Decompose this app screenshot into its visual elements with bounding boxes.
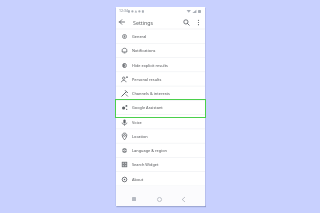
button[interactable]: Language & region: [116, 143, 205, 157]
button[interactable]: Home: [153, 193, 165, 205]
button[interactable]: About: [116, 172, 205, 186]
button[interactable]: Location: [116, 129, 205, 143]
button[interactable]: Search Widget: [116, 157, 205, 171]
staticText: Settings: [133, 19, 154, 26]
button[interactable]: Voice: [116, 115, 205, 129]
staticText: About: [132, 177, 144, 182]
button[interactable]: Channels & interests: [116, 86, 205, 100]
staticText: General: [132, 34, 147, 39]
button[interactable]: More options: [193, 15, 203, 29]
staticText: Voice: [132, 120, 142, 125]
staticText: 12:34: [119, 8, 128, 13]
staticText: Hide explicit results: [132, 63, 168, 68]
staticText: Personal results: [132, 77, 162, 82]
button[interactable]: Back: [117, 15, 127, 29]
button[interactable]: Google Assistant: [116, 100, 205, 114]
button[interactable]: Hide explicit results: [116, 58, 205, 72]
button[interactable]: Recents: [128, 193, 140, 205]
button[interactable]: General: [116, 29, 205, 43]
staticText: Google Assistant: [132, 105, 163, 110]
button[interactable]: Personal results: [116, 72, 205, 86]
staticText: Channels & interests: [132, 91, 170, 96]
button[interactable]: Notifications: [116, 43, 205, 57]
staticText: Location: [132, 134, 148, 139]
staticText: Language & region: [132, 148, 168, 153]
staticText: Notifications: [132, 48, 156, 53]
button[interactable]: Search: [181, 15, 191, 29]
button[interactable]: Back: [177, 193, 189, 205]
staticText: Search Widget: [132, 162, 159, 167]
